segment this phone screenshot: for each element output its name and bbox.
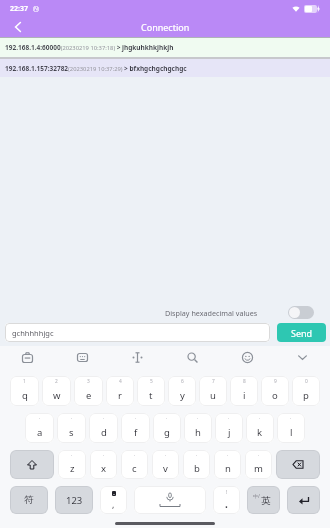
staticText: a — [37, 426, 43, 439]
staticText: x — [101, 462, 107, 475]
staticText: · — [166, 415, 168, 422]
staticText: · — [103, 452, 105, 459]
button[interactable]: · — [57, 413, 86, 443]
staticText: ! — [226, 489, 228, 496]
staticText: gchhhhhjgc — [12, 328, 54, 338]
staticText: · — [71, 415, 73, 422]
staticText: i — [243, 389, 246, 402]
staticText: l — [290, 426, 293, 439]
staticText: · — [228, 415, 230, 422]
button[interactable]: 192.168.1.4:60000(20230219 10:37:18) > j… — [5, 38, 330, 57]
staticText: · — [39, 415, 41, 422]
staticText: · — [290, 415, 292, 422]
staticText: · — [135, 415, 137, 422]
button[interactable] — [288, 306, 314, 319]
staticText: h — [195, 426, 201, 439]
button[interactable]: · — [183, 450, 210, 479]
staticText: 7 — [212, 378, 215, 385]
staticText: z — [70, 462, 75, 475]
button[interactable]: 0 — [292, 376, 320, 406]
button[interactable]: · — [121, 450, 148, 479]
button[interactable] — [220, 346, 275, 368]
button[interactable]: 中/ — [247, 486, 280, 514]
button[interactable]: · — [214, 450, 241, 479]
staticText: 6 — [181, 378, 184, 385]
staticText: Send — [291, 327, 313, 339]
staticText: u — [210, 389, 216, 402]
button[interactable]: · — [89, 413, 118, 443]
staticText: 英 — [261, 495, 271, 507]
staticText: f — [134, 426, 138, 439]
staticText: 8 — [243, 378, 246, 385]
staticText: v — [163, 462, 168, 475]
button[interactable]: 3 — [74, 376, 103, 406]
button[interactable]: ! — [213, 486, 240, 514]
button[interactable]: 1 — [10, 376, 39, 406]
button[interactable]: gchhhhhjgc — [5, 323, 270, 342]
button[interactable]: · — [25, 413, 54, 443]
staticText: m — [254, 462, 263, 475]
staticText: b — [194, 462, 200, 475]
staticText: · — [259, 415, 261, 422]
button[interactable] — [165, 346, 220, 368]
staticText: 4 — [119, 378, 122, 385]
staticText: r — [118, 389, 122, 402]
staticText: 22:37 — [10, 4, 28, 14]
staticText: 2 — [55, 378, 58, 385]
button[interactable]: · — [58, 450, 86, 479]
staticText: 1 — [23, 378, 26, 385]
staticText: 符 — [24, 494, 34, 506]
button[interactable]: 5 — [137, 376, 165, 406]
staticText: 3 — [87, 378, 90, 385]
staticText: 5 — [150, 378, 153, 385]
button[interactable]: · — [121, 413, 150, 443]
staticText: p — [303, 389, 309, 402]
button[interactable]: · — [215, 413, 243, 443]
button[interactable]: 2 — [42, 376, 71, 406]
button[interactable] — [110, 346, 165, 368]
staticText: y — [180, 389, 185, 402]
button[interactable] — [287, 486, 320, 514]
staticText: · — [165, 452, 167, 459]
button[interactable]: 8 — [230, 376, 258, 406]
staticText: · — [258, 452, 260, 459]
staticText: 192.168.1.4:60000(20230219 10:37:18) > j… — [5, 43, 174, 52]
staticText: · — [134, 452, 136, 459]
staticText: s — [69, 426, 74, 439]
staticText: d — [101, 426, 107, 439]
staticText: t — [149, 389, 153, 402]
button[interactable]: 123 — [55, 486, 93, 514]
button[interactable]: · — [277, 413, 305, 443]
staticText: e — [86, 389, 92, 402]
button[interactable]: 192.168.1.157:32782(20230219 10:37:29) >… — [5, 59, 330, 77]
button[interactable]: · — [152, 450, 179, 479]
button[interactable]: · — [153, 413, 181, 443]
button[interactable]: · — [90, 450, 117, 479]
staticText: w — [53, 389, 61, 402]
button[interactable]: 符 — [10, 486, 48, 514]
staticText: n — [225, 462, 231, 475]
button[interactable] — [275, 346, 330, 368]
button[interactable]: 9 — [261, 376, 289, 406]
button[interactable]: , — [100, 486, 127, 514]
button[interactable]: · — [184, 413, 212, 443]
button[interactable]: 4 — [106, 376, 134, 406]
staticText: 中/ — [253, 493, 260, 500]
staticText: Ⓝ — [33, 5, 39, 13]
button[interactable]: · — [245, 450, 272, 479]
button[interactable]: 7 — [199, 376, 227, 406]
staticText: , — [112, 498, 115, 510]
button[interactable]: 6 — [168, 376, 196, 406]
button[interactable] — [276, 450, 320, 479]
button[interactable]: · — [246, 413, 274, 443]
button[interactable] — [134, 486, 206, 514]
button[interactable] — [8, 17, 28, 37]
button[interactable] — [0, 346, 55, 368]
staticText: Display hexadecimal values — [165, 308, 258, 318]
button[interactable] — [10, 450, 54, 479]
staticText: 192.168.1.157:32782(20230219 10:37:29) >… — [5, 64, 187, 73]
staticText: g — [164, 426, 170, 439]
button[interactable]: Send — [277, 323, 326, 342]
staticText: · — [103, 415, 105, 422]
button[interactable] — [55, 346, 110, 368]
